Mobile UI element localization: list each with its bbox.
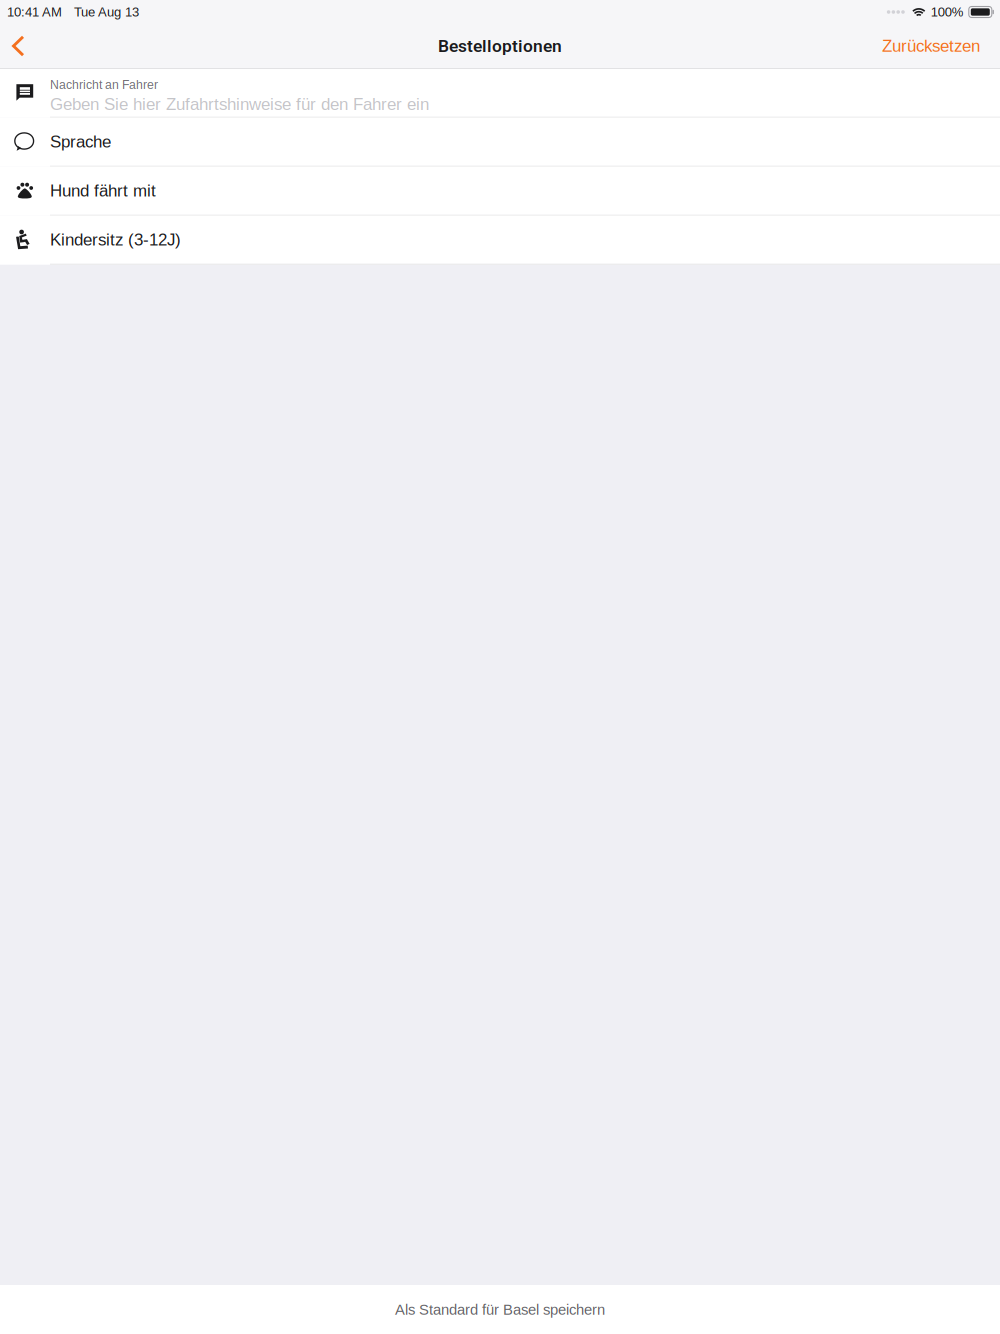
staticText: Sprache (50, 132, 111, 151)
staticText: Hund fährt mit (50, 181, 156, 200)
staticText: Kindersitz (3-12J) (50, 230, 181, 249)
staticText: Zurücksetzen (882, 36, 980, 55)
staticText: Geben Sie hier Zufahrtshinweise für den … (50, 95, 429, 113)
button[interactable]: Nachricht an Fahrer (0, 69, 1000, 118)
button[interactable]: Als Standard für Basel speichern (0, 1285, 1000, 1334)
staticText: Als Standard für Basel speichern (395, 1301, 605, 1318)
staticText: Nachricht an Fahrer (50, 78, 158, 92)
button[interactable]: Kindersitz (3-12J) (0, 216, 1000, 265)
button[interactable]: Sprache (0, 118, 1000, 167)
button[interactable]: Back (0, 24, 40, 68)
button[interactable]: Hund fährt mit (0, 167, 1000, 216)
button[interactable]: Zurücksetzen (868, 24, 1000, 67)
staticText: 10:41 AM (7, 5, 62, 19)
staticText: Tue Aug 13 (74, 5, 139, 19)
staticText: 100% (931, 5, 964, 19)
staticText: Bestelloptionen (438, 36, 562, 56)
